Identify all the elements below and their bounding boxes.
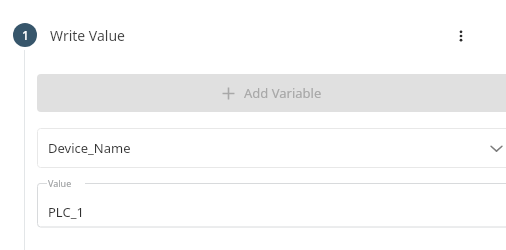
staticText: Value (48, 177, 72, 189)
button[interactable]: Value (37, 178, 506, 232)
staticText: Write Value (50, 26, 125, 45)
button[interactable]: Device_Name (37, 128, 506, 168)
staticText: Device_Name (48, 139, 131, 157)
staticText: 1 (22, 27, 29, 43)
button[interactable]: More options (447, 22, 475, 50)
staticText: Add Variable (244, 84, 322, 102)
staticText: PLC_1 (48, 203, 84, 221)
button[interactable]: 1 (13, 23, 37, 47)
button[interactable]: Write Value (50, 23, 125, 47)
button[interactable]: Add Variable (37, 74, 506, 112)
